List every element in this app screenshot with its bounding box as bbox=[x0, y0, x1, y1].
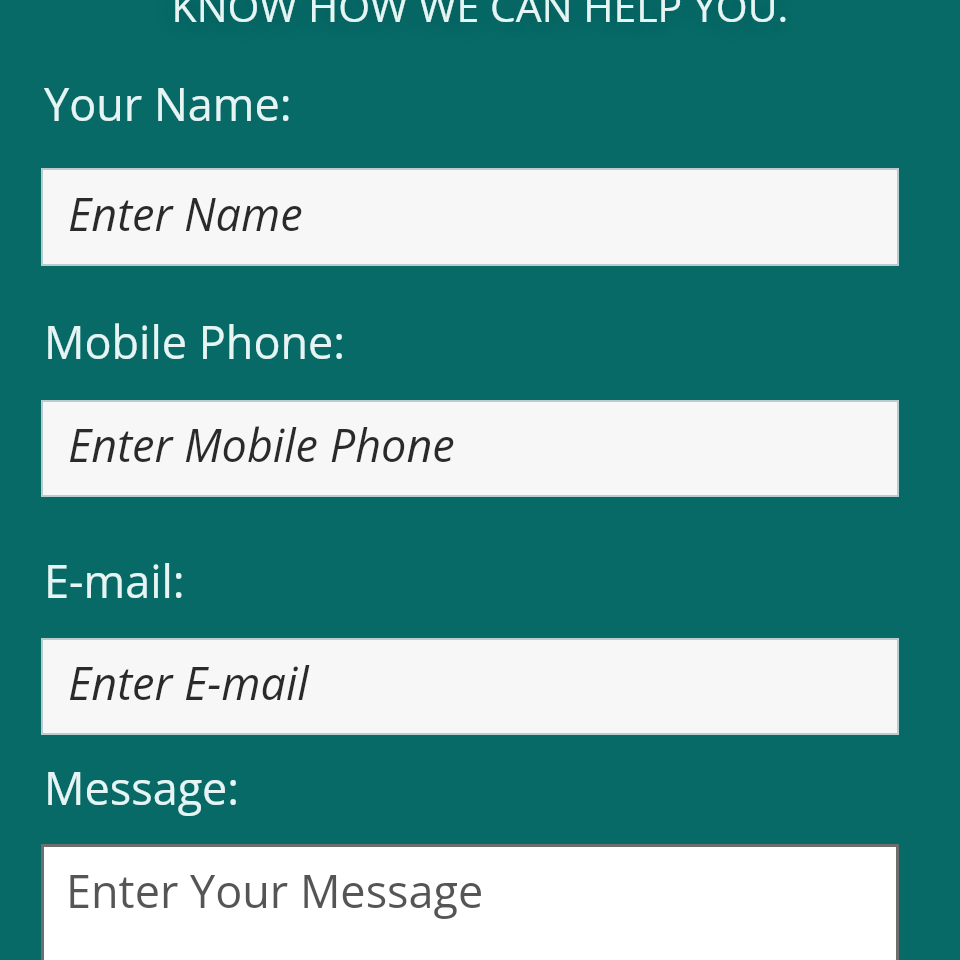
staticText: Your Name: bbox=[44, 73, 292, 134]
staticText: Enter Your Message bbox=[66, 860, 484, 921]
staticText: KNOW HOW WE CAN HELP YOU. bbox=[0, 0, 960, 34]
staticText: Enter E-mail bbox=[68, 652, 309, 713]
staticText: E-mail: bbox=[44, 550, 185, 611]
button[interactable]: Enter Mobile Phone bbox=[43, 402, 897, 495]
staticText: Mobile Phone: bbox=[44, 311, 346, 372]
staticText: Enter Name bbox=[68, 183, 303, 244]
button[interactable]: Enter E-mail bbox=[43, 640, 897, 733]
button[interactable]: Enter Name bbox=[43, 170, 897, 264]
staticText: Enter Mobile Phone bbox=[68, 414, 455, 475]
staticText: Message: bbox=[44, 757, 240, 818]
button[interactable]: Enter Your Message bbox=[44, 847, 896, 960]
